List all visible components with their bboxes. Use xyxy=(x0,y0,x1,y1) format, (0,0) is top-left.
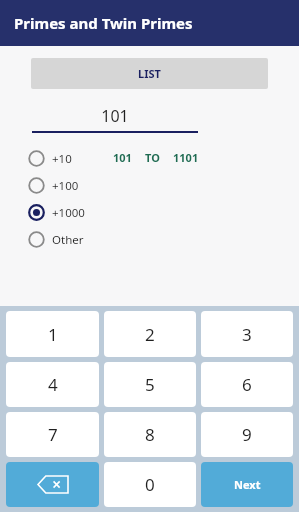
staticText: 2 xyxy=(145,323,155,346)
staticText: +100 xyxy=(52,178,79,194)
staticText: LIST xyxy=(138,66,161,81)
staticText: 7 xyxy=(48,423,58,446)
staticText: 8 xyxy=(145,423,155,446)
button[interactable]: 9 xyxy=(201,412,293,457)
button[interactable]: LIST xyxy=(31,58,268,89)
button[interactable]: 1 xyxy=(6,311,99,357)
button[interactable]: 101 xyxy=(32,105,198,133)
staticText: 6 xyxy=(242,373,252,396)
button[interactable]: 3 xyxy=(201,311,293,357)
button[interactable]: 5 xyxy=(104,362,196,407)
staticText: Primes and Twin Primes xyxy=(14,13,193,33)
button[interactable]: 8 xyxy=(104,412,196,457)
button[interactable]: +10 xyxy=(28,145,72,172)
staticText: 3 xyxy=(242,323,252,346)
button[interactable]: 7 xyxy=(6,412,99,457)
button[interactable]: +100 xyxy=(28,172,79,199)
staticText: Other xyxy=(52,232,84,248)
button[interactable]: 2 xyxy=(104,311,196,357)
button[interactable]: Next xyxy=(201,462,293,507)
staticText: +10 xyxy=(52,151,72,167)
staticText: TO xyxy=(145,150,160,165)
staticText: 9 xyxy=(242,423,252,446)
staticText: Next xyxy=(234,477,261,492)
staticText: +1000 xyxy=(52,205,85,221)
button[interactable]: 0 xyxy=(104,462,196,507)
staticText: 1101 xyxy=(173,150,199,165)
button[interactable]: 6 xyxy=(201,362,293,407)
staticText: 4 xyxy=(48,373,58,396)
button[interactable]: 4 xyxy=(6,362,99,407)
staticText: 101 xyxy=(32,105,198,127)
staticText: 5 xyxy=(145,373,155,396)
staticText: 0 xyxy=(145,473,155,496)
button[interactable]: Other xyxy=(28,226,84,253)
staticText: 1 xyxy=(48,323,58,346)
staticText: 101 xyxy=(113,150,132,165)
button[interactable]: +1000 xyxy=(28,199,85,226)
button[interactable]: Backspace xyxy=(6,462,99,507)
